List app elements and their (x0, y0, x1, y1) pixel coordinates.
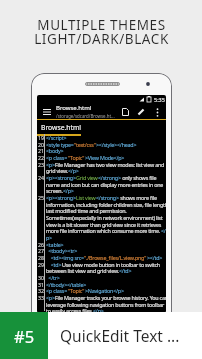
staticText: </tbody></table> (46, 281, 87, 288)
staticText: 25 (38, 194, 44, 201)
staticText: List view (76, 194, 96, 201)
staticText: File Manager tracks your browse history.… (55, 294, 166, 301)
staticText: LIGHT/DARK/BLACK (34, 30, 169, 48)
staticText: Use view mode button in toolbar to switc… (62, 261, 160, 268)
staticText: "Topic" (68, 154, 85, 161)
staticText: ></style></head> (96, 141, 137, 148)
staticText: >Navigation</p> (85, 287, 124, 294)
staticText: </strong> (98, 174, 121, 181)
staticText: 5:35 (154, 96, 165, 103)
staticText: QuickEdit Text ... (60, 325, 180, 346)
staticText: shows more file (119, 194, 157, 201)
staticText: </strong> (96, 194, 119, 201)
staticText: leverage following navigation buttons fr… (46, 301, 165, 308)
staticText: last modified time and permission. (46, 207, 127, 214)
staticText: <p> (46, 294, 55, 301)
staticText: between list view and grid view. (46, 267, 119, 274)
staticText: </tr> (46, 274, 60, 281)
button[interactable]: Navigation menu (40, 105, 53, 118)
staticText: 32 (38, 287, 44, 294)
staticText: #5 (14, 325, 35, 347)
staticText: to easily access files. (46, 307, 93, 313)
staticText: 33 (38, 294, 44, 301)
staticText: <body> (46, 147, 64, 154)
staticText: screen. (46, 187, 63, 194)
staticText: Grid view (76, 174, 98, 181)
button[interactable]: Edit (134, 105, 148, 119)
staticText: p> (46, 234, 52, 241)
staticText: <p class= (46, 154, 68, 161)
staticText: 23 (38, 161, 44, 168)
staticText: "text/css" (74, 141, 96, 148)
staticText: name and icon but can display more entri… (46, 181, 164, 188)
staticText: </p> (68, 167, 79, 174)
staticText: "./Browse_files/L.view.png" (84, 254, 147, 261)
staticText: Sometimes(especially in network environm… (46, 214, 163, 221)
staticText: <p><strong> (46, 174, 76, 181)
staticText: <td> (46, 261, 62, 268)
staticText: 27 (38, 247, 44, 254)
staticText: <p><strong> (46, 194, 76, 201)
staticText: ></td> (147, 254, 163, 261)
staticText: only shows file (121, 174, 157, 181)
staticText: </script> (46, 134, 67, 141)
staticText: 28 (38, 254, 44, 261)
staticText: <p> (46, 161, 55, 168)
button[interactable]: More options (150, 105, 164, 119)
staticText: 30 (38, 274, 44, 281)
staticText: 21 (38, 147, 44, 154)
staticText: "Topic" (68, 287, 85, 294)
staticText: information, including folder children s… (46, 201, 166, 208)
staticText: 19 (38, 134, 44, 141)
staticText: more file information which consume more… (46, 227, 161, 234)
staticText: MULTIPLE THEMES (37, 16, 166, 34)
staticText: 20 (38, 141, 44, 148)
staticText: </td> (119, 267, 132, 274)
staticText: 22 (38, 154, 44, 161)
staticText: 31 (38, 281, 44, 288)
staticText: 26 (38, 241, 44, 248)
staticText: <p class= (46, 287, 68, 294)
staticText: <table> (46, 241, 64, 248)
staticText: <td><img src= (46, 254, 84, 261)
staticText: <style type= (46, 141, 74, 148)
staticText: 29 (38, 261, 44, 268)
staticText: view is a bit slower than grid view sinc… (46, 221, 162, 228)
staticText: grid view. (46, 167, 68, 174)
staticText: <tbody><tr> (46, 247, 78, 254)
staticText: >View Mode</p> (85, 154, 125, 161)
staticText: </p> (63, 187, 74, 194)
staticText: Browse.html (41, 123, 82, 132)
staticText: Browse.html (56, 104, 92, 112)
button[interactable]: Save file (118, 105, 132, 119)
staticText: </ (161, 227, 166, 234)
staticText: /storage/sdcard/Browse.ht... (56, 113, 115, 119)
staticText: </p> (93, 307, 104, 313)
staticText: 24 (38, 174, 44, 181)
button[interactable]: #5 (0, 312, 202, 359)
staticText: File Manager has two view modes: list vi… (55, 161, 165, 168)
